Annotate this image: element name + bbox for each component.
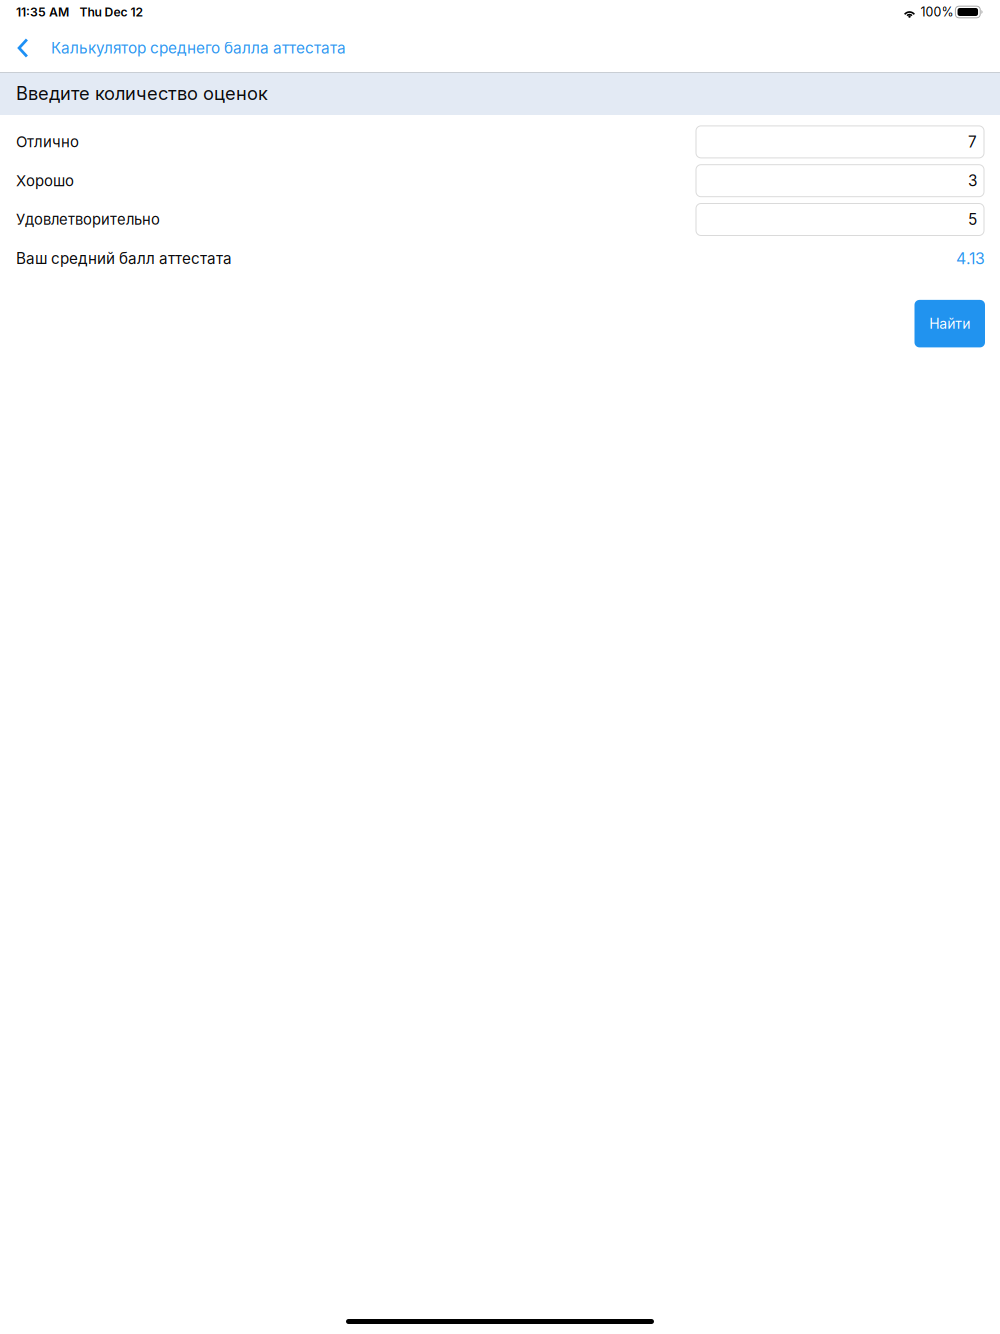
button[interactable]: Back xyxy=(6,24,40,72)
button[interactable]: Калькулятор среднего балла аттестата xyxy=(40,24,346,72)
staticText: 11:35 AM xyxy=(16,5,69,19)
staticText: Калькулятор среднего балла аттестата xyxy=(51,39,346,57)
staticText: Хорошо xyxy=(16,172,74,190)
staticText: Введите количество оценок xyxy=(16,82,268,104)
button[interactable]: Найти xyxy=(914,300,985,347)
staticText: 4.13 xyxy=(956,249,985,268)
staticText: 100% xyxy=(920,4,953,19)
staticText: Thu Dec 12 xyxy=(79,5,143,19)
staticText: Удовлетворительно xyxy=(16,211,160,228)
staticText: 3 xyxy=(968,171,977,190)
staticText: Найти xyxy=(929,315,970,332)
staticText: 7 xyxy=(968,133,977,151)
staticText: Ваш средний балл аттестата xyxy=(16,249,232,268)
staticText: 5 xyxy=(968,210,977,229)
staticText: Отлично xyxy=(16,133,79,151)
button[interactable]: Хорошо xyxy=(696,165,984,197)
button[interactable]: Отлично xyxy=(696,126,984,158)
button[interactable]: Удовлетворительно xyxy=(696,203,984,235)
